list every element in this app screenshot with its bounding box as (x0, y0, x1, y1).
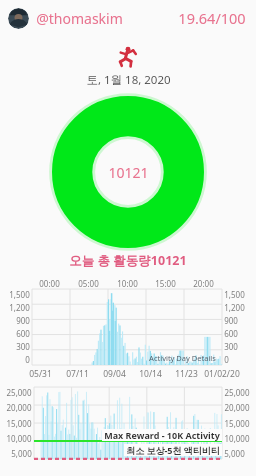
staticText: 25,000 (6, 387, 32, 398)
staticText: 1,500 (9, 289, 30, 300)
staticText: 300 (224, 341, 238, 352)
staticText: 1,200 (9, 302, 30, 313)
staticText: 5,000 (224, 448, 245, 459)
staticText: 25,000 (224, 387, 250, 398)
staticText: 600 (16, 328, 30, 339)
staticText: 10:00 (117, 278, 138, 289)
staticText: 15,000 (224, 418, 250, 429)
staticText: 05/31 (29, 368, 52, 380)
staticText: 20:00 (193, 278, 214, 289)
staticText: 15,000 (6, 418, 32, 429)
staticText: 07/11 (66, 368, 89, 380)
button[interactable]: 00:00 (0, 277, 256, 381)
staticText: Max Reward - 10K Activity (104, 429, 220, 441)
staticText: 00:00 (39, 278, 60, 289)
staticText: 10,000 (6, 433, 32, 444)
staticText: 05:00 (78, 278, 99, 289)
staticText: 19.64/100 (178, 8, 246, 28)
staticText: 300 (16, 341, 30, 352)
staticText: 1,500 (224, 289, 245, 300)
staticText: @thomaskim (36, 9, 123, 28)
staticText: 900 (224, 315, 238, 326)
staticText: 20,000 (224, 402, 250, 413)
button[interactable]: @thomaskim (36, 9, 123, 28)
staticText: 900 (16, 315, 30, 326)
staticText: 600 (224, 328, 238, 339)
staticText: 20,000 (6, 402, 32, 413)
staticText: 0 (224, 354, 229, 365)
staticText: 10/14 (139, 368, 162, 380)
staticText: 토, 1월 18, 2020 (86, 72, 171, 88)
staticText: 11/23 (175, 368, 198, 380)
staticText: Activity Day Details (149, 353, 216, 363)
button[interactable]: 10121 (52, 96, 204, 248)
staticText: 최소 보상-5천 액티비티 (126, 444, 220, 456)
staticText: 09/04 (103, 368, 126, 380)
staticText: 01/02/20 (204, 368, 240, 380)
staticText: 오늘 총 활동량10121 (69, 252, 187, 269)
button[interactable]: Profile photo (8, 8, 29, 29)
staticText: 15:00 (155, 278, 176, 289)
staticText: 1,200 (224, 302, 245, 313)
button[interactable]: 25,000 (0, 387, 256, 459)
button[interactable]: 19.64/100 (178, 8, 246, 28)
staticText: 10121 (108, 163, 149, 182)
other: Running activity (115, 46, 141, 68)
staticText: 0 (25, 354, 30, 365)
staticText: 5,000 (11, 448, 32, 459)
staticText: 10,000 (224, 433, 250, 444)
